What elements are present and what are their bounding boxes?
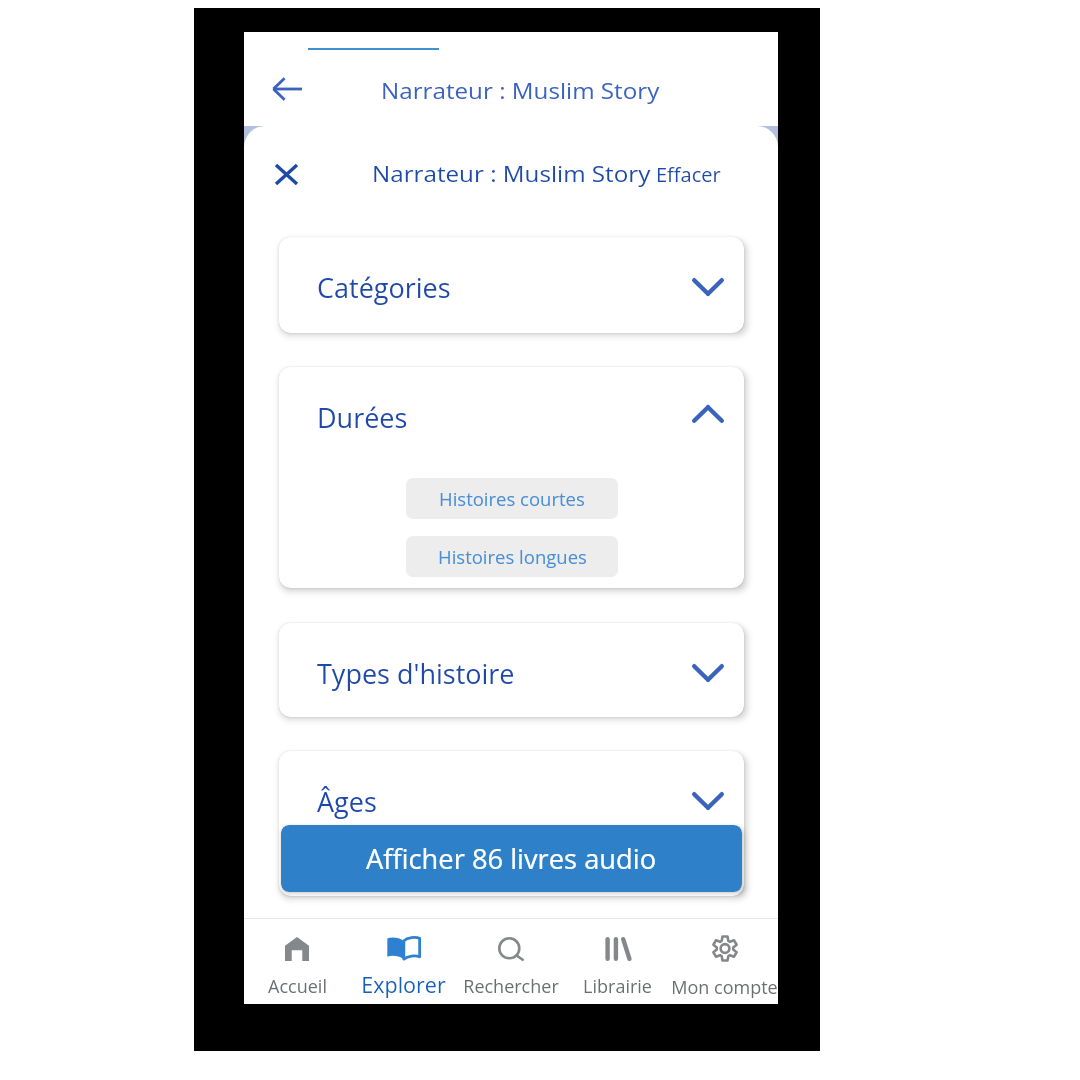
- button[interactable]: Close: [268, 156, 304, 192]
- button[interactable]: Histoires courtes: [406, 478, 618, 519]
- staticText: Librairie: [583, 974, 652, 999]
- button[interactable]: Catégories: [279, 237, 744, 333]
- staticText: Narrateur : Muslim Story: [372, 158, 650, 188]
- staticText: Accueil: [268, 974, 327, 999]
- button[interactable]: Durées: [279, 367, 744, 588]
- button[interactable]: Rechercher: [457, 937, 564, 999]
- staticText: Rechercher: [463, 974, 559, 999]
- staticText: Narrateur : Muslim Story: [381, 75, 659, 105]
- button[interactable]: Types d'histoire: [279, 623, 744, 717]
- staticText: Âges: [317, 783, 377, 820]
- button[interactable]: Explorer: [350, 937, 457, 999]
- button[interactable]: Back: [269, 71, 305, 107]
- button[interactable]: Accueil: [244, 937, 350, 999]
- staticText: Afficher 86 livres audio: [366, 840, 657, 877]
- button[interactable]: Âges: [279, 751, 744, 896]
- staticText: Explorer: [361, 970, 446, 999]
- button[interactable]: Effacer: [656, 161, 721, 188]
- staticText: Catégories: [317, 269, 451, 306]
- staticText: Durées: [317, 399, 408, 436]
- staticText: Types d'histoire: [317, 655, 515, 692]
- staticText: Mon compte: [671, 975, 778, 1000]
- button[interactable]: Mon compte: [671, 935, 778, 1000]
- button[interactable]: Histoires longues: [406, 536, 618, 577]
- staticText: Histoires longues: [438, 544, 587, 569]
- button[interactable]: Afficher 86 livres audio: [281, 825, 742, 892]
- button[interactable]: Librairie: [564, 937, 671, 999]
- staticText: Histoires courtes: [439, 486, 585, 511]
